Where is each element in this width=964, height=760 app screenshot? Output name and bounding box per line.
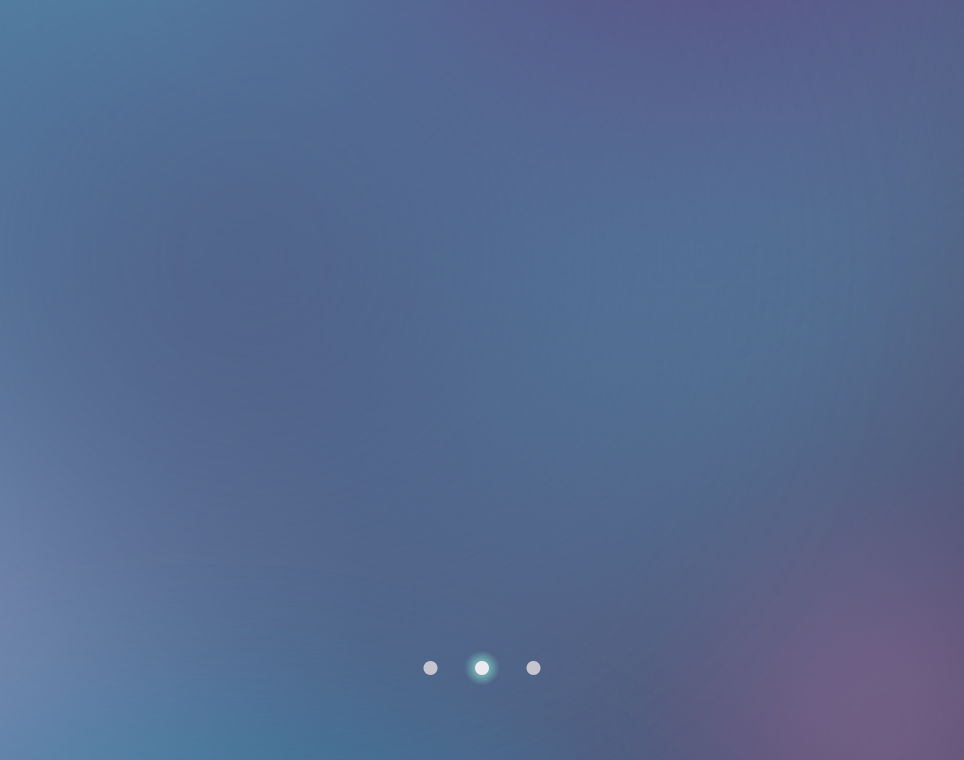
button[interactable]: Page 2 of 3, current page — [460, 646, 504, 690]
button[interactable]: Page 3 of 3 — [511, 646, 555, 690]
button[interactable]: Page 1 of 3 — [408, 646, 452, 690]
